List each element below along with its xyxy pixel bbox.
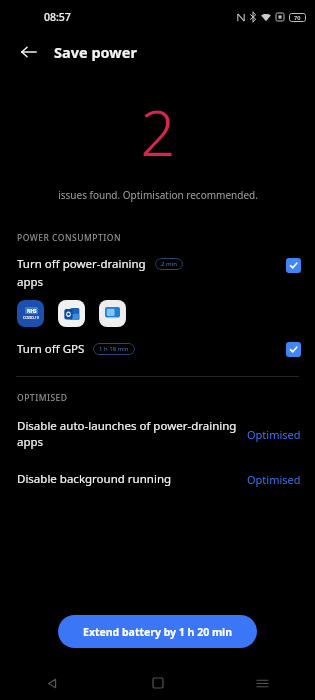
- button[interactable]: Disable auto-launches of power-draining …: [0, 418, 315, 450]
- button[interactable]: Toggle selection: [286, 258, 301, 273]
- staticText: Disable auto-launches of power-draining …: [17, 418, 239, 450]
- button[interactable]: NHS COVID-19 app: [17, 300, 44, 327]
- button[interactable]: Turn off power-draining: [0, 256, 315, 290]
- staticText: Save power: [54, 42, 137, 62]
- button[interactable]: Extend battery by 1 h 20 min: [58, 615, 257, 648]
- staticText: OPTIMISED: [17, 392, 68, 404]
- staticText: Disable background running: [17, 471, 239, 487]
- staticText: Optimised: [247, 427, 301, 442]
- button[interactable]: Recent apps: [210, 666, 315, 700]
- staticText: COVID-19: [23, 315, 39, 320]
- button[interactable]: Toggle selection: [286, 342, 301, 357]
- staticText: 70: [294, 14, 301, 21]
- button[interactable]: Home: [105, 666, 210, 700]
- button[interactable]: Back: [0, 666, 105, 700]
- staticText: Turn off GPS: [17, 341, 85, 357]
- button[interactable]: Turn off GPS: [0, 341, 315, 357]
- staticText: issues found. Optimisation recommended.: [58, 188, 258, 202]
- staticText: POWER CONSUMPTION: [17, 232, 122, 244]
- button[interactable]: Outlook app: [58, 300, 85, 327]
- staticText: apps: [17, 274, 44, 290]
- staticText: 2 min: [161, 260, 177, 268]
- staticText: 08:57: [44, 10, 71, 24]
- staticText: 2: [140, 90, 176, 174]
- staticText: Turn off power-draining: [17, 256, 146, 272]
- button[interactable]: Remote desktop app: [99, 300, 126, 327]
- button[interactable]: Back: [14, 37, 44, 67]
- staticText: Extend battery by 1 h 20 min: [83, 625, 233, 639]
- button[interactable]: Disable background running: [0, 471, 315, 487]
- staticText: 1 h 18 min: [99, 345, 129, 353]
- staticText: NHS: [27, 308, 37, 314]
- staticText: Optimised: [247, 472, 301, 487]
